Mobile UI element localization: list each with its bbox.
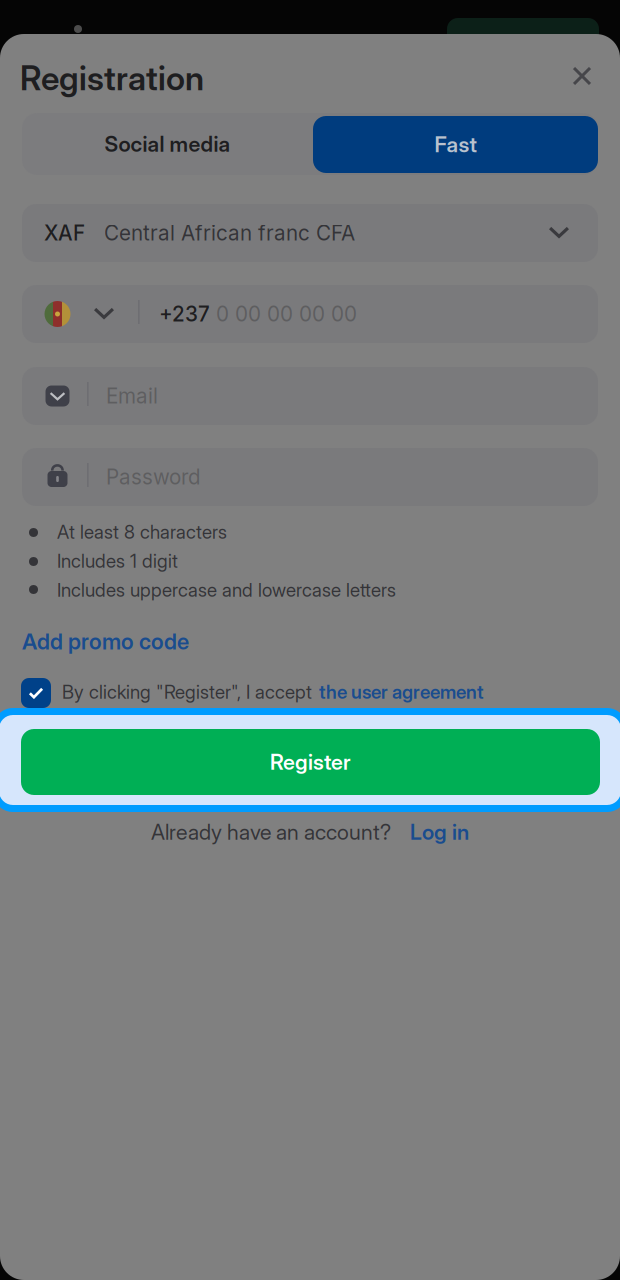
staticText: Fast — [434, 132, 476, 157]
staticText: By clicking "Register", I accept — [62, 681, 312, 703]
staticText: Includes uppercase and lowercase letters — [57, 579, 396, 601]
staticText: Central African franc CFA — [104, 220, 355, 245]
button[interactable]: Email — [0, 0, 576, 58]
staticText: At least 8 characters — [57, 521, 227, 543]
button[interactable]: XAF — [0, 0, 576, 58]
button[interactable]: Password — [0, 0, 576, 58]
button[interactable]: Select country code — [0, 0, 620, 1280]
button[interactable]: By clicking "Register", I accept — [0, 0, 620, 34]
staticText: +237 — [159, 301, 210, 326]
button[interactable]: Social media — [0, 0, 291, 62]
button[interactable]: Already have an account? — [0, 0, 620, 30]
staticText: 0 00 00 00 00 — [216, 301, 357, 326]
staticText: Social media — [104, 131, 230, 157]
staticText: Password — [106, 464, 201, 489]
staticText: Register — [270, 749, 351, 775]
staticText: Includes 1 digit — [57, 550, 178, 572]
staticText: Log in — [410, 819, 469, 845]
button[interactable]: Register — [0, 0, 620, 1280]
staticText: Already have an account? — [151, 819, 391, 845]
staticText: Registration — [20, 58, 204, 98]
staticText: the user agreement — [319, 681, 484, 703]
button[interactable]: Close — [0, 0, 44, 44]
staticText: Add promo code — [22, 628, 189, 655]
staticText: XAF — [44, 220, 85, 245]
button[interactable]: Fast — [0, 0, 285, 57]
staticText: Email — [106, 383, 158, 408]
